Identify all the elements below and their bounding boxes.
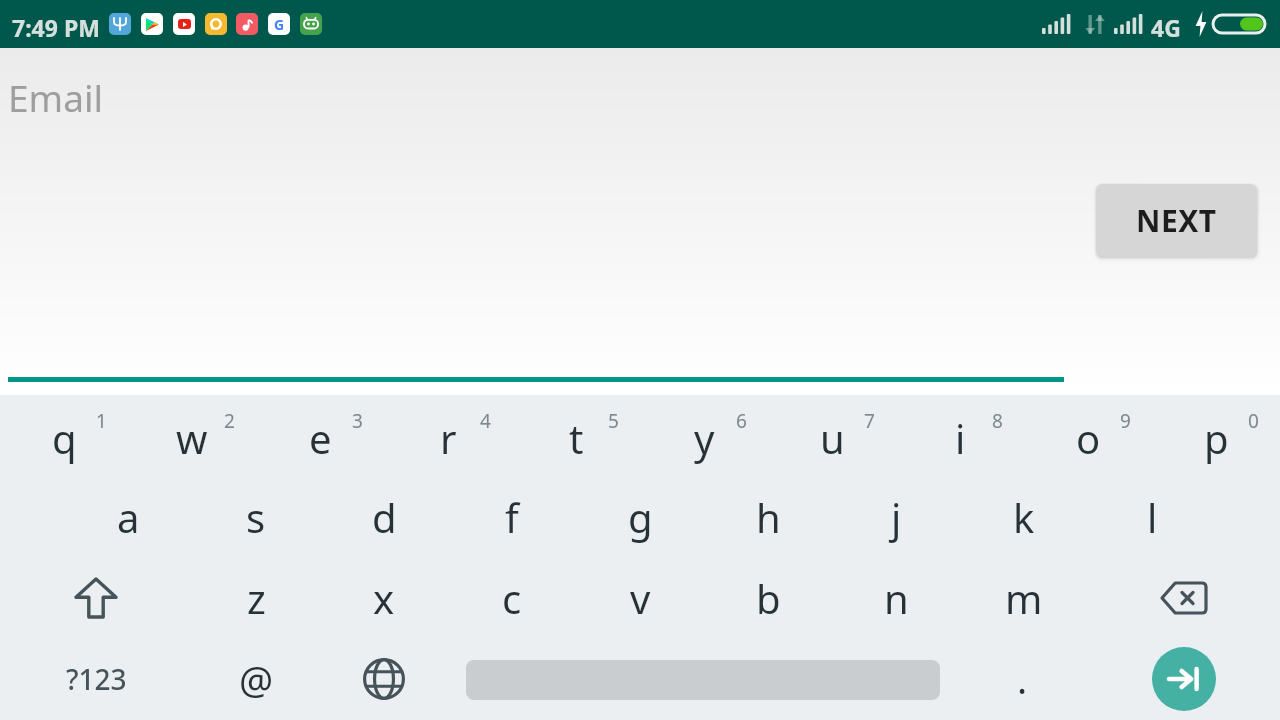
- button[interactable]: u: [768, 397, 896, 478]
- button[interactable]: NEXT: [1096, 184, 1257, 257]
- staticText: n: [884, 571, 909, 625]
- button[interactable]: z: [192, 557, 320, 638]
- staticText: j: [891, 490, 902, 544]
- button[interactable]: x: [320, 557, 448, 638]
- button[interactable]: w: [128, 397, 256, 478]
- staticText: h: [756, 490, 781, 544]
- button[interactable]: i: [896, 397, 1024, 478]
- staticText: d: [372, 490, 397, 544]
- staticText: x: [373, 571, 395, 625]
- button[interactable]: k: [960, 476, 1088, 557]
- button[interactable]: .: [958, 638, 1086, 720]
- staticText: a: [117, 490, 140, 544]
- button[interactable]: [0, 557, 192, 638]
- staticText: 4G: [1151, 12, 1181, 43]
- staticText: z: [247, 571, 266, 625]
- button[interactable]: o: [1024, 397, 1152, 478]
- staticText: w: [176, 411, 208, 465]
- button[interactable]: m: [960, 557, 1088, 638]
- staticText: 0: [1248, 408, 1259, 434]
- staticText: .: [1017, 653, 1028, 705]
- button[interactable]: h: [704, 476, 832, 557]
- staticText: t: [569, 411, 584, 465]
- button[interactable]: [1152, 647, 1216, 711]
- button[interactable]: d: [320, 476, 448, 557]
- staticText: 1: [96, 408, 107, 434]
- staticText: e: [309, 411, 332, 465]
- staticText: b: [756, 571, 781, 625]
- button[interactable]: @: [192, 638, 320, 719]
- staticText: NEXT: [1136, 200, 1217, 241]
- button[interactable]: b: [704, 557, 832, 638]
- staticText: 7:49 PM: [12, 12, 100, 43]
- staticText: G: [274, 15, 285, 34]
- staticText: 3: [352, 408, 363, 434]
- staticText: u: [820, 411, 845, 465]
- staticText: v: [630, 571, 651, 625]
- staticText: c: [502, 571, 522, 625]
- button[interactable]: v: [576, 557, 704, 638]
- button[interactable]: n: [832, 557, 960, 638]
- button[interactable]: y: [640, 397, 768, 478]
- button[interactable]: p: [1152, 397, 1280, 478]
- staticText: q: [52, 411, 77, 465]
- staticText: f: [505, 490, 519, 544]
- button[interactable]: t: [512, 397, 640, 478]
- button[interactable]: r: [384, 397, 512, 478]
- button[interactable]: j: [832, 476, 960, 557]
- staticText: 7: [864, 408, 875, 434]
- staticText: r: [440, 411, 457, 465]
- staticText: 8: [992, 408, 1003, 434]
- button[interactable]: ?123: [0, 638, 192, 720]
- staticText: k: [1013, 490, 1035, 544]
- staticText: Email: [8, 72, 104, 122]
- button[interactable]: [320, 638, 448, 720]
- button[interactable]: l: [1088, 476, 1216, 557]
- staticText: 4: [480, 408, 491, 434]
- button[interactable]: q: [0, 397, 128, 478]
- staticText: @: [239, 653, 274, 705]
- staticText: l: [1147, 490, 1158, 544]
- button[interactable]: s: [192, 476, 320, 557]
- button[interactable]: a: [64, 476, 192, 557]
- staticText: s: [246, 490, 266, 544]
- button[interactable]: g: [576, 476, 704, 557]
- button[interactable]: [1088, 557, 1280, 638]
- staticText: ?123: [66, 660, 127, 698]
- button[interactable]: c: [448, 557, 576, 638]
- staticText: 5: [608, 408, 619, 434]
- staticText: i: [955, 411, 966, 465]
- staticText: 9: [1120, 408, 1131, 434]
- staticText: 6: [736, 408, 747, 434]
- staticText: p: [1204, 411, 1229, 465]
- button[interactable]: e: [256, 397, 384, 478]
- staticText: 2: [224, 408, 235, 434]
- staticText: o: [1076, 411, 1101, 465]
- staticText: g: [628, 490, 653, 544]
- staticText: y: [694, 411, 715, 465]
- staticText: m: [1005, 571, 1043, 625]
- button[interactable]: f: [448, 476, 576, 557]
